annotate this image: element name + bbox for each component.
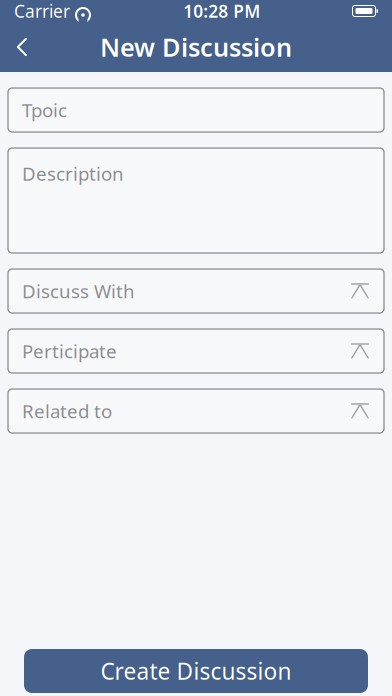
staticText: Perticipate <box>22 339 117 363</box>
staticText: Tpoic <box>22 98 67 122</box>
staticText: Related to <box>22 399 112 423</box>
staticText: New Discussion <box>100 30 292 64</box>
button[interactable]: Perticipate <box>8 329 384 373</box>
staticText: Discuss With <box>22 279 135 303</box>
button[interactable]: Back <box>0 25 44 69</box>
button[interactable]: Description <box>8 148 384 253</box>
button[interactable]: Discuss With <box>8 269 384 313</box>
button[interactable]: Create Discussion <box>24 649 368 693</box>
staticText: Carrier <box>14 0 70 22</box>
button[interactable]: Related to <box>8 389 384 433</box>
staticText: Create Discussion <box>100 656 291 686</box>
staticText: 10:28 PM <box>183 0 260 22</box>
button[interactable]: Tpoic <box>8 88 384 132</box>
staticText: Description <box>22 161 124 186</box>
